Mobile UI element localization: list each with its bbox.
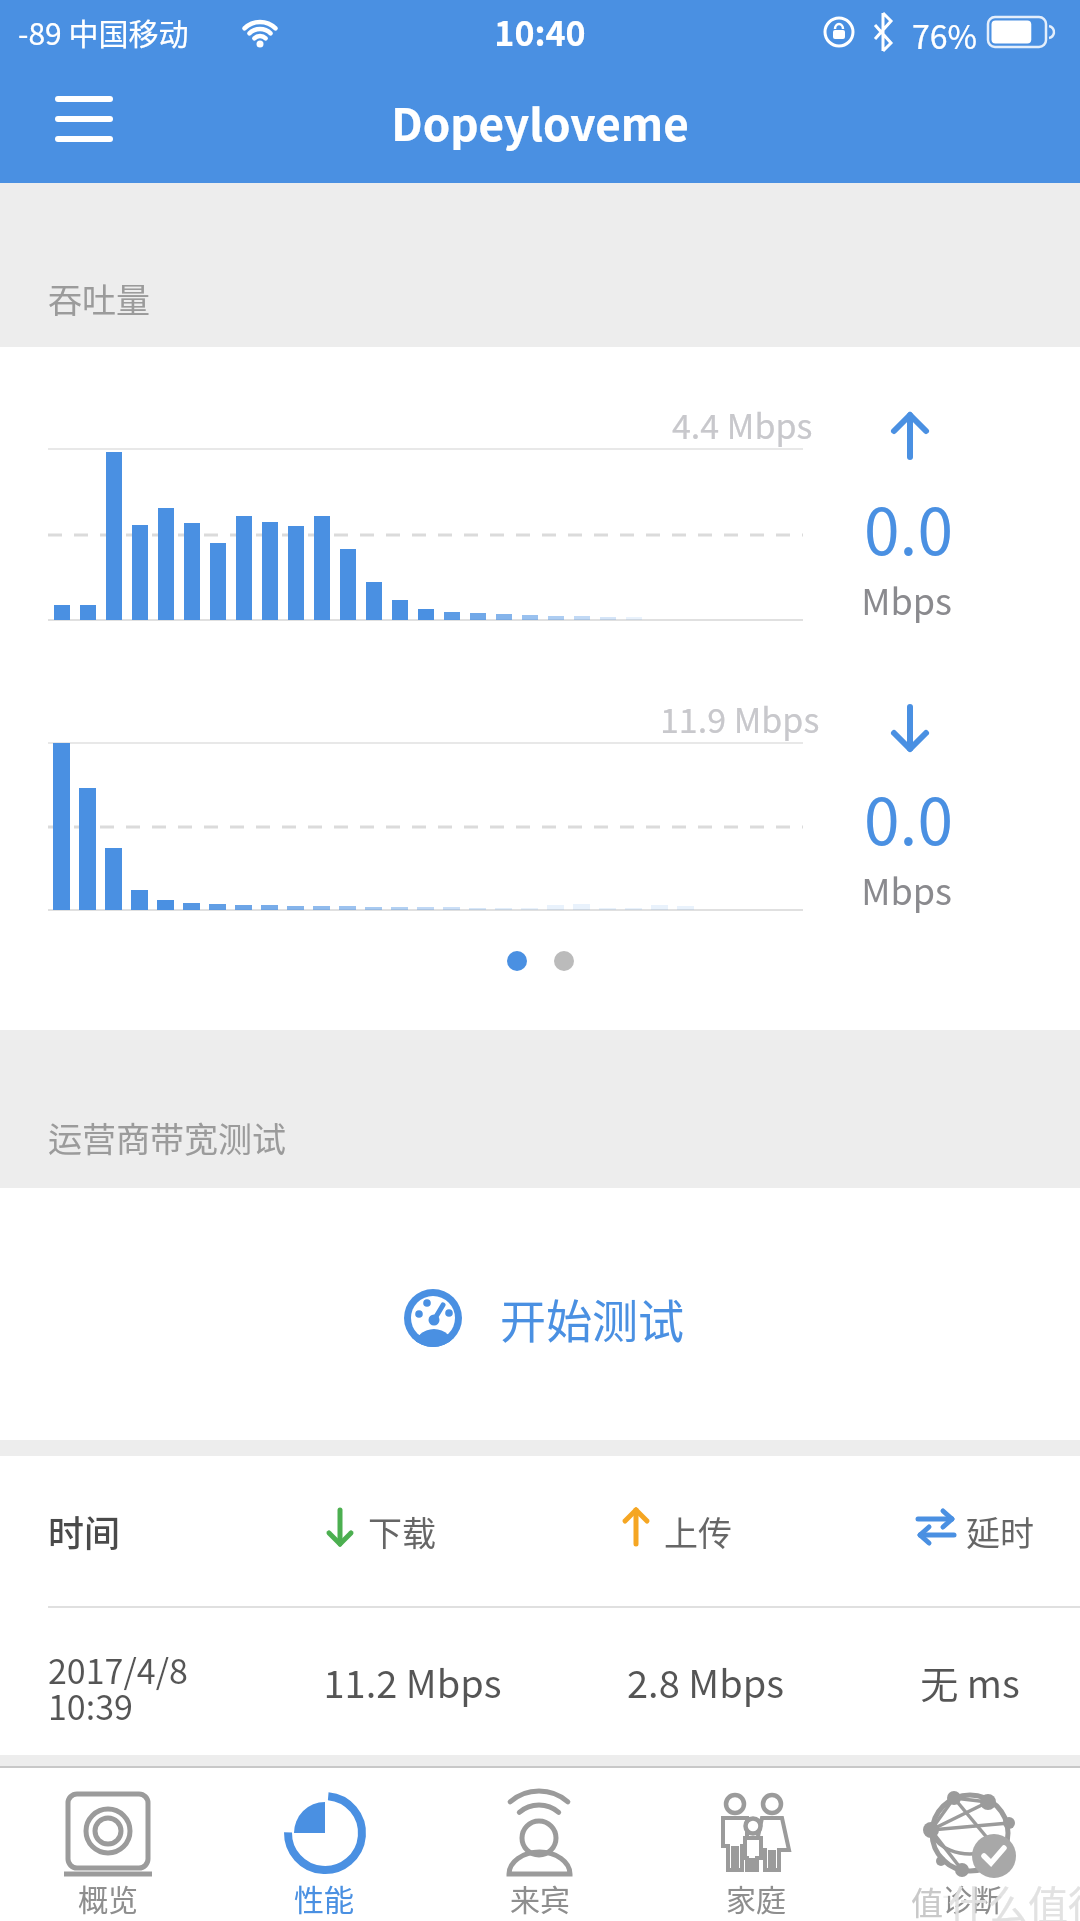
staticText: 4.4 Mbps bbox=[672, 400, 813, 449]
staticText: 运营商带宽测试 bbox=[48, 1113, 286, 1162]
staticText: 无 ms bbox=[920, 1654, 1020, 1709]
staticText: 10:40 bbox=[494, 7, 586, 56]
staticText: 76% bbox=[912, 12, 977, 58]
staticText: Mbps bbox=[861, 573, 952, 625]
staticText: 开始测试 bbox=[500, 1285, 684, 1352]
staticText: 0.0 bbox=[864, 481, 953, 574]
button[interactable]: 开始测试 bbox=[404, 1270, 704, 1366]
button[interactable]: 性能 bbox=[216, 1766, 432, 1921]
staticText: 家庭 bbox=[726, 1876, 786, 1919]
staticText: 2017/4/8 bbox=[48, 1645, 188, 1694]
staticText: 吞吐量 bbox=[48, 274, 150, 323]
button[interactable]: 来宾 bbox=[432, 1766, 648, 1921]
staticText: 0.0 bbox=[864, 771, 953, 864]
staticText: 11.2 Mbps bbox=[323, 1654, 502, 1709]
staticText: 来宾 bbox=[510, 1876, 570, 1919]
staticText: 时间 bbox=[48, 1505, 121, 1557]
staticText: 10:39 bbox=[48, 1681, 133, 1730]
staticText: 概览 bbox=[78, 1876, 138, 1919]
button[interactable] bbox=[44, 86, 124, 156]
button[interactable]: 家庭 bbox=[648, 1766, 864, 1921]
staticText: 11.9 Mbps bbox=[660, 694, 820, 743]
staticText: 下载 bbox=[368, 1507, 436, 1556]
staticText: 上传 bbox=[664, 1507, 732, 1556]
staticText: 诊断 bbox=[942, 1876, 1002, 1919]
staticText: 性能 bbox=[294, 1876, 354, 1919]
staticText: -89 中国移动 bbox=[18, 10, 189, 53]
staticText: 什么值得买 bbox=[948, 1874, 1080, 1921]
staticText: Mbps bbox=[861, 863, 952, 915]
staticText: 延时 bbox=[966, 1507, 1034, 1556]
staticText: 值 bbox=[911, 1878, 944, 1921]
button[interactable]: 诊断 bbox=[864, 1766, 1080, 1921]
staticText: Dopeyloveme bbox=[391, 90, 689, 154]
staticText: 2.8 Mbps bbox=[627, 1654, 784, 1709]
button[interactable]: 概览 bbox=[0, 1766, 216, 1921]
